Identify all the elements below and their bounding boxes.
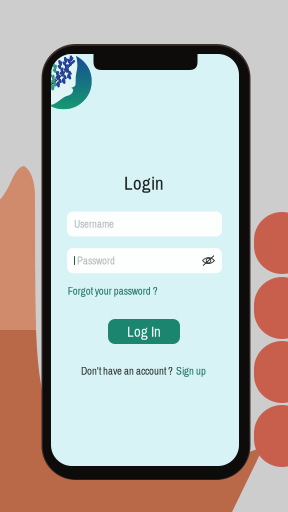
button[interactable]: Sign up (176, 364, 206, 378)
button[interactable]: Show password (202, 255, 215, 267)
button[interactable]: Log In (108, 319, 180, 344)
staticText: Don't have an account ? (81, 364, 173, 378)
staticText: Sign up (176, 364, 206, 378)
staticText: Password (77, 253, 115, 268)
staticText: Login (124, 170, 164, 195)
staticText: Forgot your password ? (68, 284, 158, 298)
staticText: Log In (127, 322, 161, 341)
staticText: Username (74, 217, 114, 231)
button[interactable]: Forgot your password ? (68, 284, 158, 298)
